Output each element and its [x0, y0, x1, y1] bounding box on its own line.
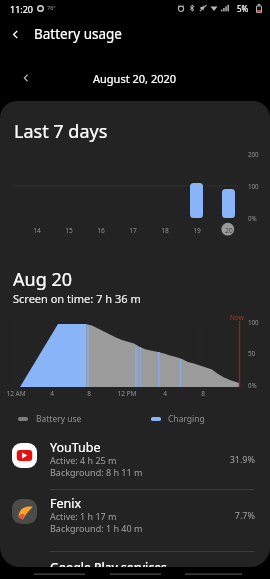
- button[interactable]: Charging: [151, 412, 251, 426]
- staticText: 200: [248, 150, 259, 158]
- staticText: August 20, 2020: [93, 71, 177, 86]
- staticText: Screen on time: 7 h 36 m: [13, 291, 141, 306]
- staticText: 11:20: [10, 3, 34, 15]
- staticText: 76°: [47, 4, 56, 11]
- staticText: 16: [91, 226, 111, 235]
- staticText: 18: [155, 226, 175, 235]
- button[interactable]: Fenix: [0, 494, 270, 546]
- button[interactable]: YouTube: [0, 438, 270, 490]
- button[interactable]: Previous day: [11, 63, 41, 93]
- staticText: 4: [37, 389, 67, 398]
- staticText: 19: [187, 226, 207, 235]
- staticText: Last 7 days: [14, 119, 108, 144]
- staticText: YouTube: [50, 439, 101, 456]
- staticText: 5%: [237, 3, 249, 14]
- staticText: 12 AM: [1, 389, 31, 398]
- button[interactable]: Battery use: [18, 412, 148, 426]
- staticText: Active: 1 h 17 m: [50, 510, 117, 522]
- staticText: 100: [248, 318, 259, 326]
- staticText: Aug 20: [13, 267, 72, 292]
- staticText: Background: 1 h 40 m: [50, 522, 143, 534]
- staticText: 0%: [248, 214, 257, 222]
- staticText: 100: [248, 182, 259, 190]
- staticText: Background: 8 h 11 m: [50, 466, 143, 478]
- staticText: 8: [74, 389, 104, 398]
- staticText: 50: [248, 349, 256, 357]
- staticText: Battery usage: [34, 25, 122, 43]
- staticText: 15: [59, 226, 79, 235]
- staticText: Google Play services: [50, 559, 167, 567]
- staticText: Battery use: [36, 413, 82, 425]
- staticText: 31.9%: [195, 453, 255, 465]
- staticText: 20: [219, 226, 239, 235]
- button[interactable]: Back: [0, 19, 30, 49]
- staticText: 12 PM: [112, 389, 142, 398]
- staticText: 17: [123, 226, 143, 235]
- staticText: 4: [150, 389, 180, 398]
- staticText: 8: [188, 389, 218, 398]
- staticText: Charging: [168, 413, 205, 425]
- staticText: Active: 4 h 25 m: [50, 454, 117, 466]
- staticText: Fenix: [50, 495, 82, 512]
- staticText: 14: [27, 226, 47, 235]
- staticText: Now: [230, 313, 244, 322]
- staticText: 0%: [248, 381, 257, 389]
- staticText: 7.7%: [195, 509, 255, 521]
